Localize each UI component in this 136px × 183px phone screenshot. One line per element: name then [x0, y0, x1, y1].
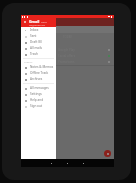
button[interactable]: Trash [21, 51, 56, 57]
button[interactable]: Sent [21, 33, 56, 39]
button[interactable]: Back [50, 162, 53, 165]
staticText: Trash [30, 52, 38, 56]
button[interactable]: Promotions [21, 59, 114, 65]
button[interactable]: Notes & Memos [21, 64, 56, 70]
button[interactable]: Google Play [21, 47, 114, 53]
staticText: Sent [30, 34, 37, 38]
button[interactable]: Compose [104, 150, 111, 157]
staticText: All mails [30, 46, 43, 50]
button[interactable]: Recents [82, 162, 85, 165]
button[interactable]: All messages [21, 85, 56, 91]
staticText: Inbox [30, 28, 39, 32]
button[interactable]: Help and feedback [21, 97, 56, 103]
button[interactable]: Draft (8) [21, 39, 56, 45]
staticText: All messages [30, 86, 49, 90]
button[interactable]: Social offers [21, 53, 114, 59]
staticText: Offline Track [30, 71, 49, 75]
button[interactable]: Archives [21, 76, 56, 82]
button[interactable]: Inbox [21, 27, 56, 33]
staticText: Draft (8) [30, 40, 42, 44]
button[interactable]: Offline Track [21, 70, 56, 76]
button[interactable]: Settings [21, 91, 56, 97]
button[interactable]: Sign out [21, 103, 56, 109]
staticText: Sign out [30, 104, 43, 108]
staticText: me@gmail.com [29, 24, 45, 27]
button[interactable]: All mails [21, 45, 56, 51]
staticText: Gmail [29, 19, 40, 24]
staticText: Archives [30, 77, 43, 81]
staticText: Help and feedback [30, 98, 56, 102]
staticText: Settings [30, 92, 42, 96]
staticText: LABELS [24, 60, 33, 63]
button[interactable]: Home [66, 162, 69, 165]
staticText: Notes & Memos [30, 65, 54, 69]
staticText: INBOX [41, 21, 47, 24]
